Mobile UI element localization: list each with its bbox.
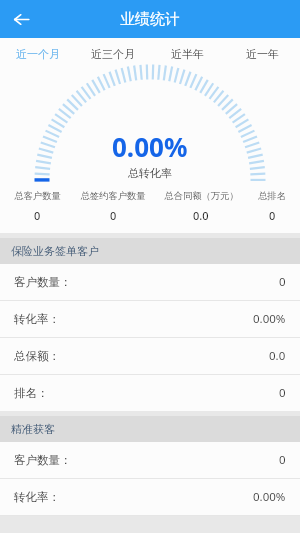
- staticText: 0.0: [193, 208, 209, 223]
- staticText: 近一个月: [16, 47, 60, 61]
- button[interactable]: 近三个月: [75, 38, 150, 69]
- staticText: 总转化率: [128, 166, 172, 180]
- staticText: 业绩统计: [120, 10, 180, 29]
- staticText: 总签约客户数量: [80, 190, 146, 202]
- staticText: 客户数量：: [14, 453, 72, 467]
- button[interactable]: 近半年: [150, 38, 225, 69]
- staticText: 总保额：: [14, 349, 60, 363]
- staticText: 0.00%: [112, 129, 188, 164]
- button[interactable]: 返回: [5, 3, 37, 35]
- staticText: 总合同额（万元）: [164, 190, 239, 202]
- staticText: 0.00%: [253, 311, 286, 327]
- staticText: 0.00%: [253, 489, 286, 505]
- button[interactable]: 近一年: [225, 38, 300, 69]
- staticText: 0: [279, 452, 286, 468]
- staticText: 总客户数量: [14, 190, 61, 202]
- staticText: 0: [110, 208, 117, 223]
- staticText: 0: [269, 208, 276, 223]
- button[interactable]: 排名：: [0, 375, 300, 411]
- staticText: 近半年: [171, 47, 204, 61]
- staticText: 0: [34, 208, 41, 223]
- staticText: 精准获客: [11, 422, 55, 436]
- staticText: 客户数量：: [14, 275, 72, 289]
- staticText: 0: [279, 274, 286, 290]
- button[interactable]: 客户数量：: [0, 264, 300, 300]
- staticText: 近一年: [246, 47, 279, 61]
- button[interactable]: 转化率：: [0, 479, 300, 515]
- staticText: 排名：: [14, 386, 49, 400]
- staticText: 总排名: [258, 190, 286, 202]
- button[interactable]: 总保额：: [0, 338, 300, 374]
- staticText: 0: [279, 385, 286, 401]
- staticText: 近三个月: [91, 47, 135, 61]
- button[interactable]: 近一个月: [0, 38, 75, 69]
- staticText: 保险业务签单客户: [11, 244, 99, 258]
- button[interactable]: 客户数量：: [0, 442, 300, 478]
- button[interactable]: 转化率：: [0, 301, 300, 337]
- staticText: 转化率：: [14, 312, 60, 326]
- staticText: 0.0: [269, 348, 286, 364]
- staticText: 转化率：: [14, 490, 60, 504]
